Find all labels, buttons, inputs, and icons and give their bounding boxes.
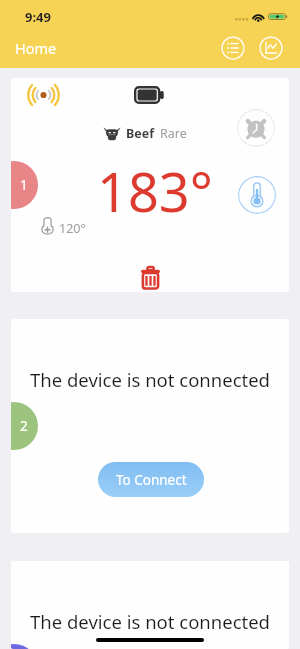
button[interactable]: Beef — [11, 78, 289, 292]
staticText: 183° — [97, 154, 213, 228]
staticText: 1 — [20, 176, 28, 194]
button[interactable]: The device is not connected — [11, 561, 289, 649]
button[interactable]: Temperature — [238, 176, 276, 214]
staticText: To Connect — [116, 471, 187, 489]
staticText: Rare — [160, 125, 187, 142]
staticText: Beef — [126, 125, 155, 142]
button[interactable]: The device is not connected — [11, 319, 289, 533]
staticText: 9:49 — [25, 8, 51, 26]
staticText: 120° — [59, 220, 86, 237]
button[interactable]: Chart — [259, 36, 283, 60]
button[interactable]: Alarm — [237, 109, 275, 147]
staticText: The device is not connected — [30, 367, 271, 392]
staticText: Home — [15, 38, 57, 58]
button[interactable]: Delete — [138, 266, 162, 290]
button[interactable]: List — [221, 36, 245, 60]
staticText: 2 — [20, 417, 28, 435]
button[interactable]: To Connect — [98, 462, 204, 497]
staticText: The device is not connected — [30, 609, 271, 634]
